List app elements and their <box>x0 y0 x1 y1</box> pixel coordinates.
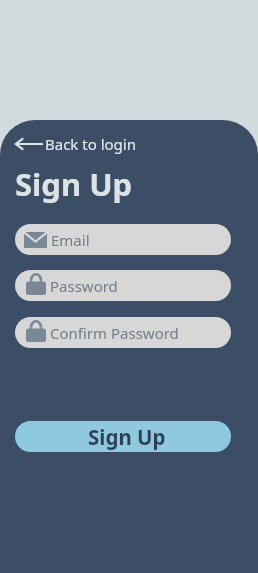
staticText: Sign Up <box>15 163 133 205</box>
staticText: Back to login <box>45 134 136 154</box>
staticText: Password <box>50 276 118 296</box>
button[interactable]: Password <box>15 270 231 301</box>
staticText: Confirm Password <box>50 323 179 343</box>
staticText: Sign Up <box>88 423 166 451</box>
other: Back <box>14 136 43 152</box>
button[interactable]: Email <box>15 224 231 255</box>
button[interactable]: Sign Up <box>15 421 231 452</box>
staticText: Email <box>51 230 90 250</box>
button[interactable]: Back <box>14 134 136 154</box>
button[interactable]: Confirm Password <box>15 317 231 348</box>
